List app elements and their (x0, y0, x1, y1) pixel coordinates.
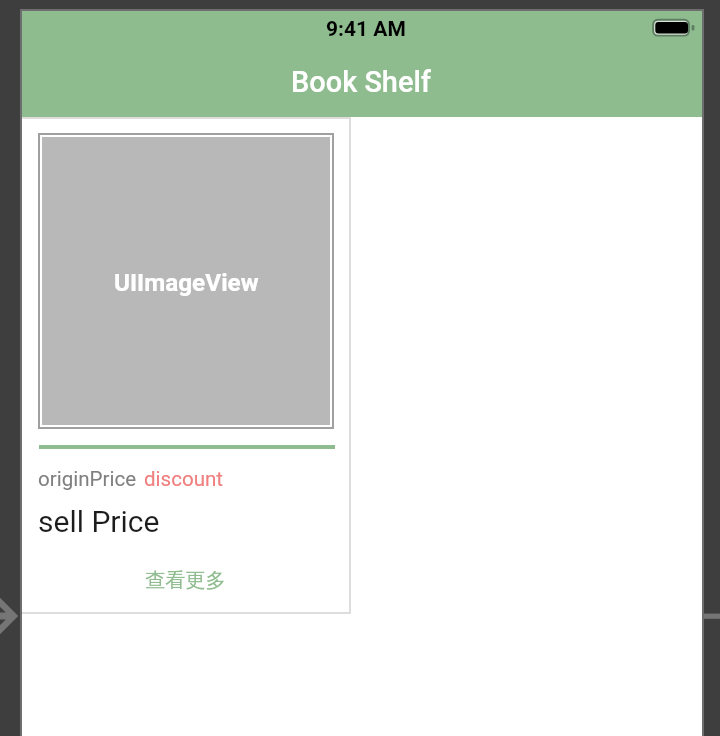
button[interactable]: UIImageView (22, 117, 351, 614)
staticText: 查看更多 (145, 568, 226, 593)
staticText: originPrice (38, 467, 137, 491)
staticText: Book Shelf (291, 65, 432, 99)
staticText: UIImageView (114, 268, 259, 296)
staticText: sell Price (38, 504, 160, 539)
staticText: discount (144, 467, 224, 491)
staticText: 9:41 AM (326, 17, 406, 42)
button[interactable]: 查看更多 (22, 561, 349, 605)
other: Battery full (22, 11, 702, 117)
